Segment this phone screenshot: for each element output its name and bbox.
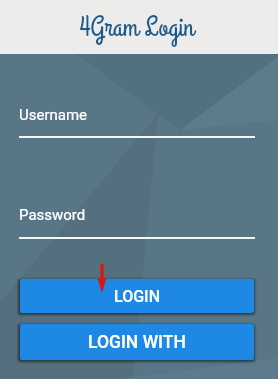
button[interactable]: LOGIN WITH: [20, 324, 254, 360]
staticText: LOGIN WITH: [88, 332, 186, 353]
staticText: Password: [19, 206, 86, 224]
staticText: 4Gram Login: [79, 9, 194, 47]
staticText: LOGIN: [114, 287, 160, 306]
button[interactable]: LOGIN: [20, 279, 254, 313]
staticText: Username: [19, 106, 88, 124]
other: Points to login button: [96, 262, 108, 294]
